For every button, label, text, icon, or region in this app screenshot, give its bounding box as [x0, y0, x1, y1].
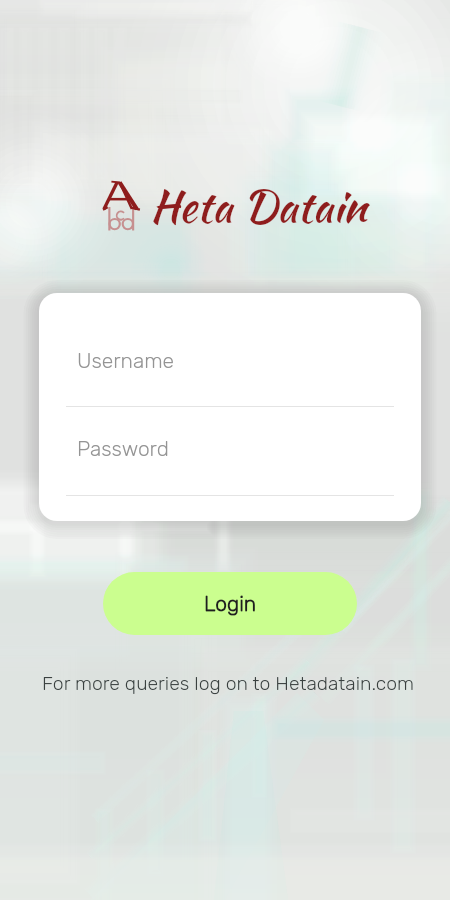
button[interactable]: Password: [77, 425, 394, 471]
other: Heta Datain logo: [103, 174, 367, 238]
staticText: For more queries log on to Hetadatain.co…: [42, 672, 415, 695]
staticText: Username: [77, 348, 175, 373]
staticText: Password: [77, 436, 169, 461]
button[interactable]: Login: [103, 572, 357, 635]
staticText: Login: [204, 591, 257, 616]
button[interactable]: Username: [77, 337, 394, 383]
staticText: Heta Datain: [150, 174, 367, 238]
